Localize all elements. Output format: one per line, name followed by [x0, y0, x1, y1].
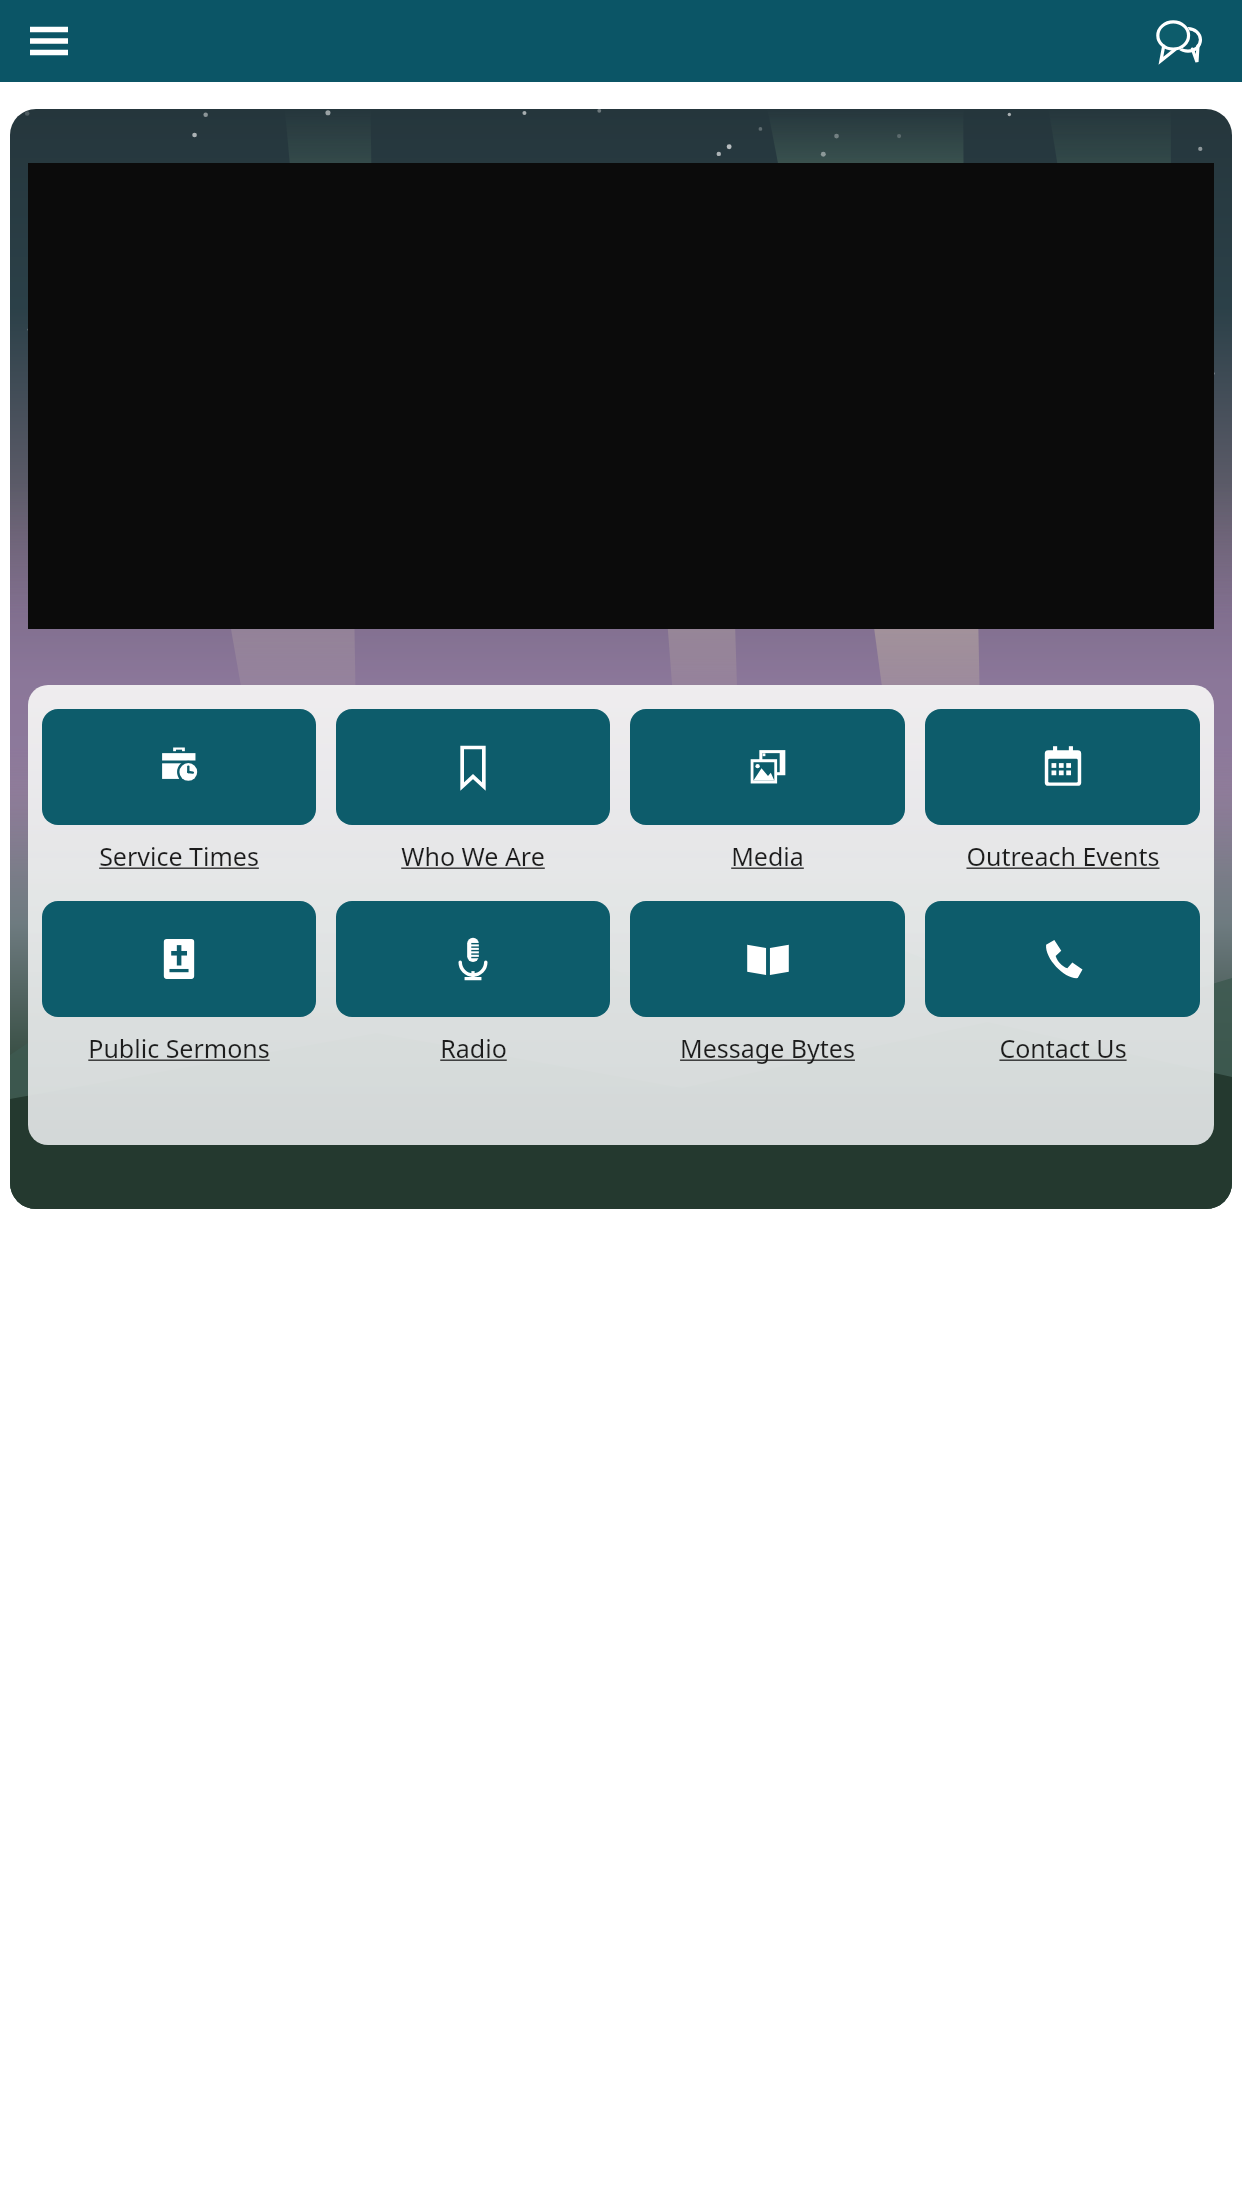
button[interactable]: Radio [336, 901, 610, 1065]
staticText: Radio [440, 1031, 507, 1065]
staticText: Outreach Events [966, 839, 1160, 873]
staticText: Who We Are [401, 839, 545, 873]
button[interactable]: Outreach Events [925, 709, 1200, 873]
button[interactable]: Public Sermons [42, 901, 316, 1065]
button[interactable]: Message Bytes [630, 901, 905, 1065]
staticText: Public Sermons [88, 1031, 270, 1065]
staticText: Message Bytes [680, 1031, 855, 1065]
button[interactable]: Media [630, 709, 905, 873]
button[interactable]: Who We Are [336, 709, 610, 873]
button[interactable]: Messages [1142, 4, 1216, 78]
button[interactable]: Contact Us [925, 901, 1200, 1065]
staticText: Media [731, 839, 804, 873]
button[interactable]: Service Times [42, 709, 316, 873]
staticText: Contact Us [999, 1031, 1127, 1065]
button[interactable]: Menu [18, 10, 80, 72]
staticText: Service Times [99, 839, 259, 873]
